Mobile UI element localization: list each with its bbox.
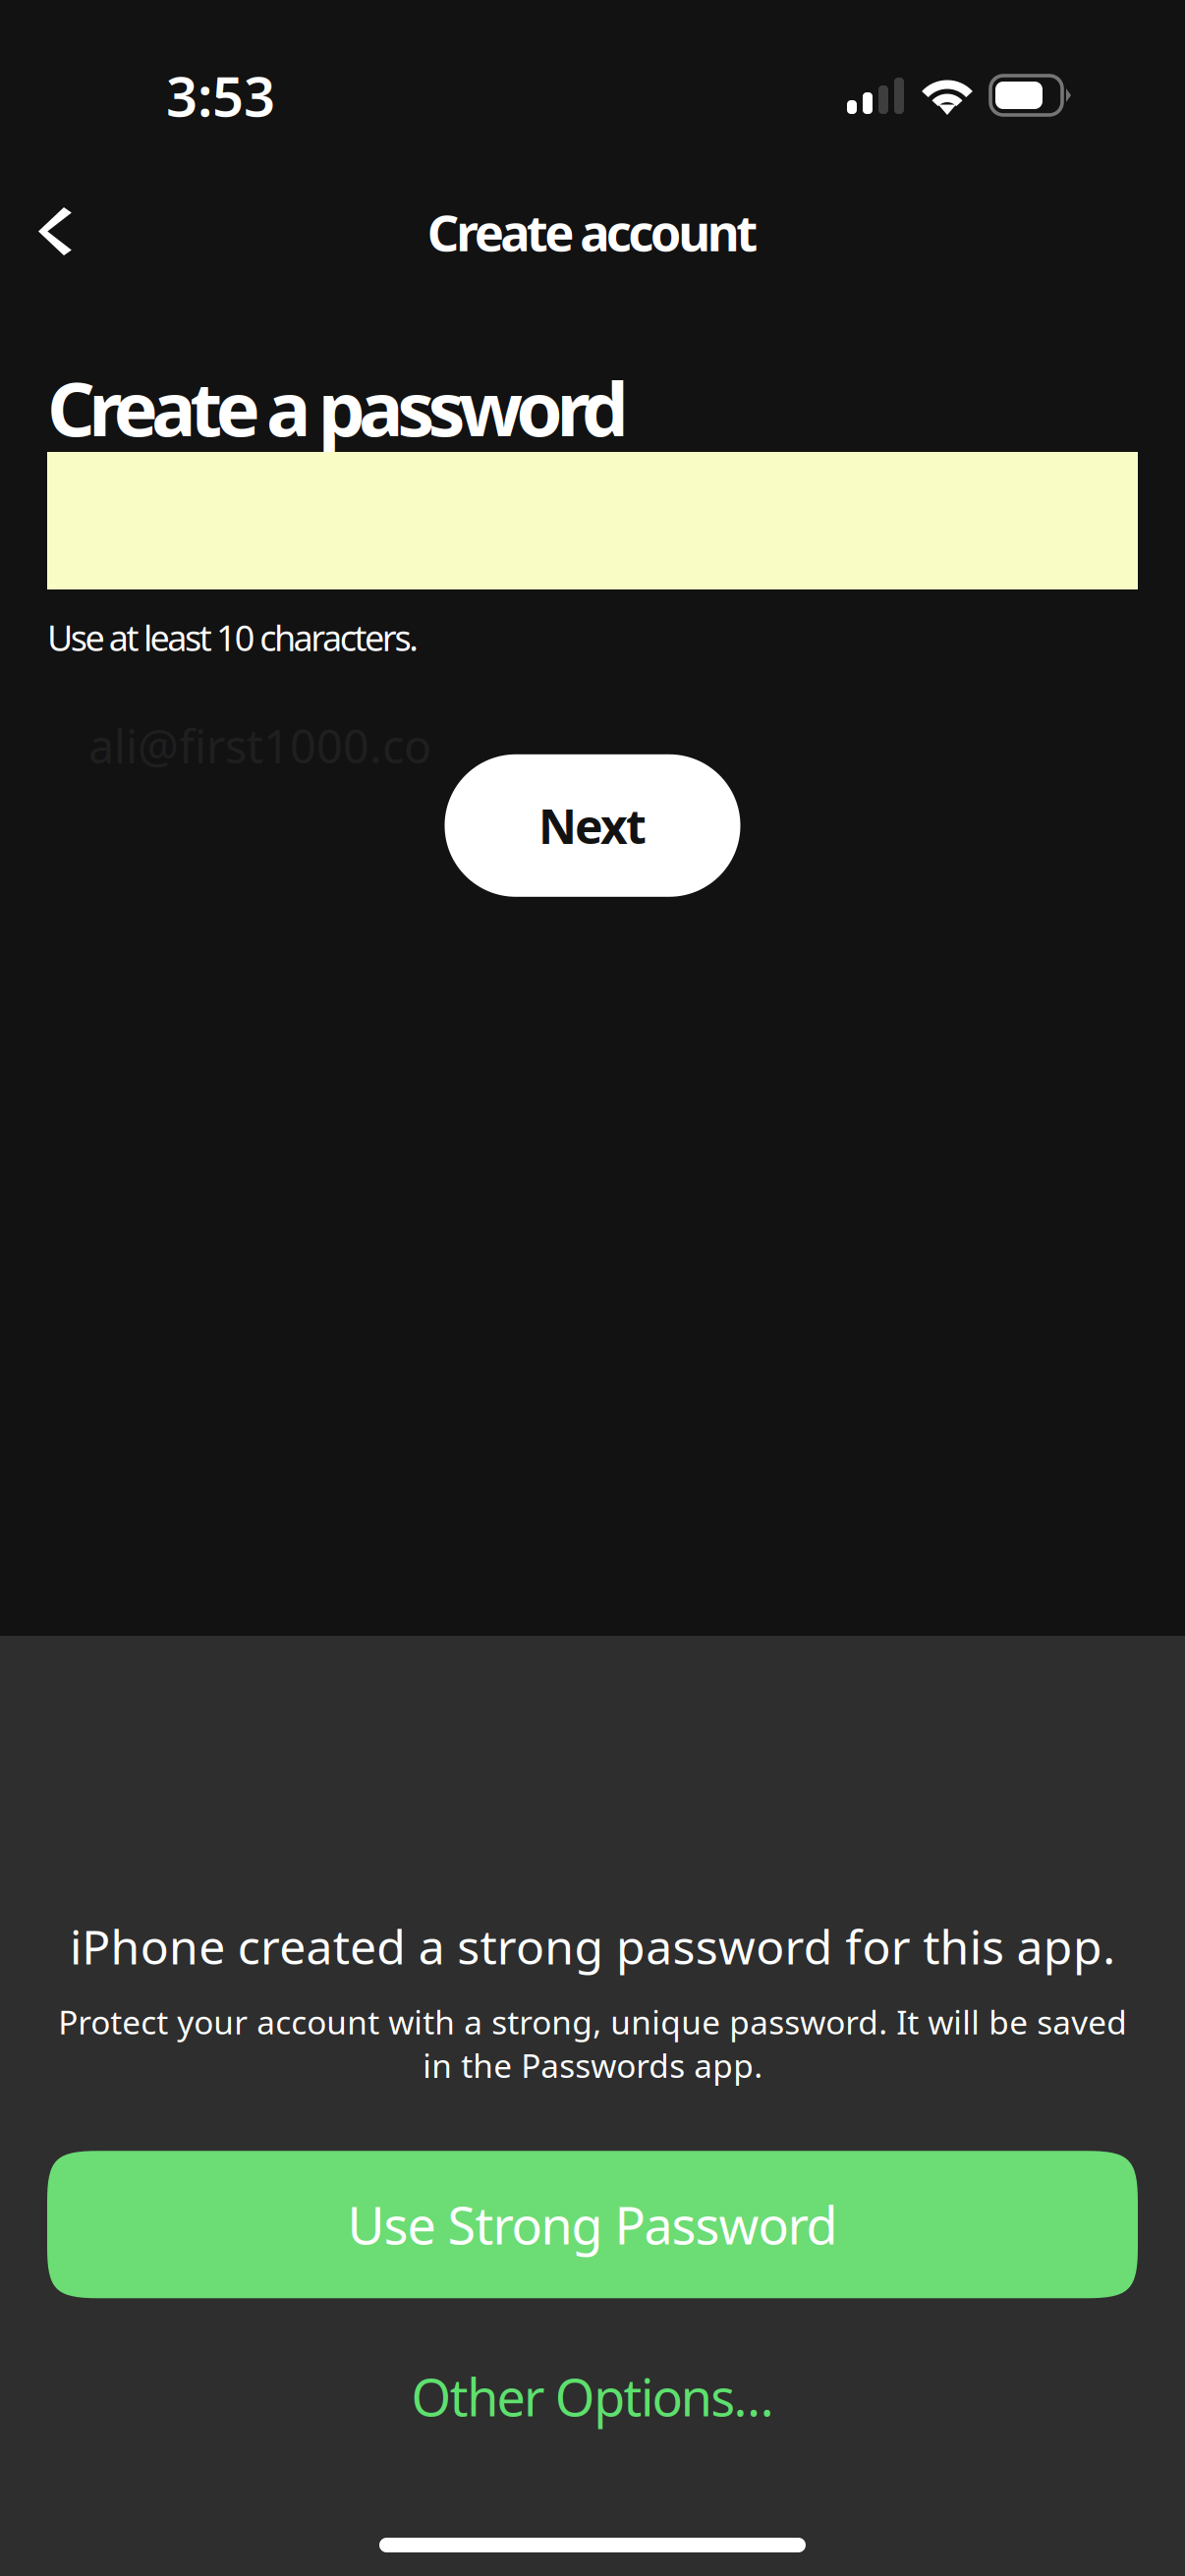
button[interactable]: Back xyxy=(0,191,108,273)
staticText: iPhone created a strong password for thi… xyxy=(70,1915,1115,1977)
staticText: Other Options… xyxy=(411,2363,774,2430)
staticText: Use Strong Password xyxy=(347,2191,838,2258)
staticText: ali@first1000.co xyxy=(88,715,431,776)
staticText: 3:53 xyxy=(166,59,275,132)
staticText: Next xyxy=(538,794,647,857)
button[interactable]: Other Options… xyxy=(47,2349,1138,2444)
button[interactable]: Next xyxy=(445,754,740,897)
staticText: Create a password xyxy=(47,358,629,457)
staticText: Protect your account with a strong, uniq… xyxy=(58,2000,1127,2087)
staticText: Create account xyxy=(427,199,758,265)
button[interactable]: Password xyxy=(47,452,1138,589)
button[interactable]: Use Strong Password xyxy=(47,2151,1138,2298)
staticText: Use at least 10 characters. xyxy=(47,614,419,661)
